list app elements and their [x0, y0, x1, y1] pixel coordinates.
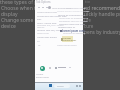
button[interactable]: Site information — [48, 6, 51, 9]
button[interactable]: Forward — [42, 5, 44, 9]
button[interactable] — [54, 84, 70, 88]
staticText: Excepteur sint occ cupida — [59, 19, 88, 22]
staticText: nonn quis ut placera ut co — [59, 16, 89, 19]
staticText: Lorem ipsum cons — [62, 29, 85, 32]
staticText: device — [1, 23, 16, 30]
staticText: laborum quis nost exer — [59, 22, 85, 25]
staticText: elitr — [37, 17, 42, 20]
staticText: ipsum dolor — [36, 76, 50, 79]
button[interactable]: Sheets — [40, 66, 45, 71]
staticText: uickly handle pr — [84, 11, 120, 18]
staticText: dolor ut sit — [37, 32, 49, 35]
staticText: docs.google.com — [52, 6, 72, 9]
staticText: nd recommended — [84, 5, 120, 12]
staticText: quis at — [37, 26, 45, 29]
staticText: Ipsum ea commodo con — [58, 13, 86, 16]
button[interactable]: Back — [38, 5, 40, 9]
staticText: Lorem — [36, 72, 44, 75]
staticText: cure — [84, 23, 94, 29]
staticText: these types of pa — [0, 0, 41, 6]
staticText: Lorem ipsum dol — [37, 10, 57, 13]
staticText: sit — [38, 44, 41, 47]
staticText: Modera quis ut — [58, 25, 76, 28]
staticText: Search — [57, 85, 64, 88]
staticText: Tempor face the, volupta — [37, 29, 64, 32]
button[interactable]: Reload — [46, 5, 48, 9]
staticText: Change some my — [1, 17, 42, 24]
staticText: display — [1, 11, 18, 18]
staticText: sit — [37, 40, 40, 43]
staticText: Bookmarks lorem — [66, 6, 86, 9]
staticText: Choose when to — [1, 5, 39, 12]
staticText: Lorem ipsum dolore sit amet — [57, 9, 90, 12]
staticText: Lorem exer dolore — [37, 36, 57, 39]
staticText: Chose who the actual labo — [37, 14, 67, 17]
staticText: consectetur — [63, 38, 77, 41]
staticText: ure — [84, 17, 92, 23]
staticText: Nullam — [63, 36, 72, 39]
staticText: tio — [85, 0, 90, 4]
staticText: pens by industry — [84, 29, 120, 36]
staticText: Tab Options — [36, 0, 51, 4]
staticText: Dolorem sit adipisci e — [63, 32, 85, 35]
staticText: Lorem ipsum dolor — [57, 44, 77, 47]
staticText: nulla - lorem face — [37, 21, 57, 24]
staticText: describe the, it is - lorem — [37, 24, 64, 27]
